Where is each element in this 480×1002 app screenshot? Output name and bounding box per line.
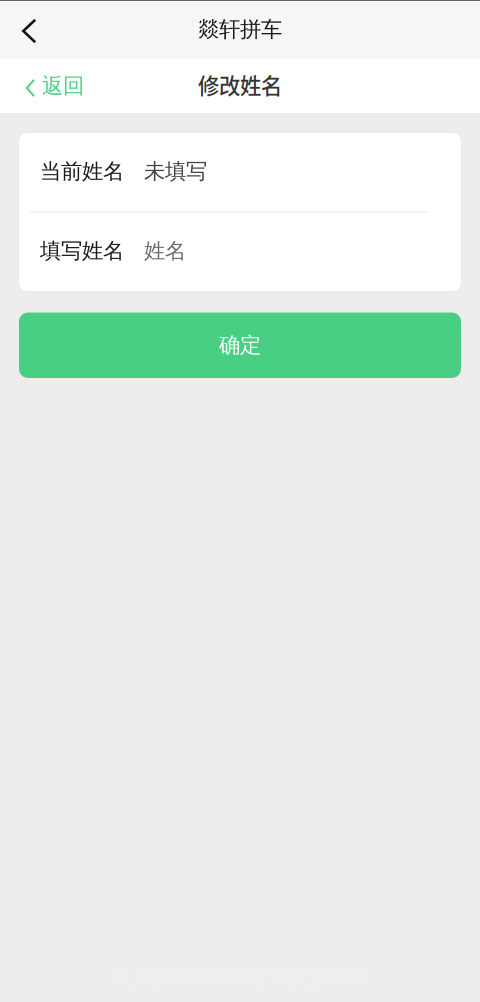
button[interactable]: 确定 [19, 312, 461, 378]
staticText: 当前姓名 [40, 158, 124, 185]
staticText: 返回 [42, 73, 84, 99]
button[interactable]: 返回 [0, 59, 140, 113]
staticText: 燚轩拼车 [198, 16, 282, 43]
button[interactable]: Back [0, 0, 62, 59]
staticText: 填写姓名 [40, 238, 124, 264]
staticText: 修改姓名 [198, 69, 282, 99]
staticText: 确定 [219, 332, 261, 358]
staticText: 姓名 [144, 238, 186, 264]
button[interactable]: 填写姓名 [19, 212, 461, 291]
staticText: 未填写 [144, 158, 207, 185]
